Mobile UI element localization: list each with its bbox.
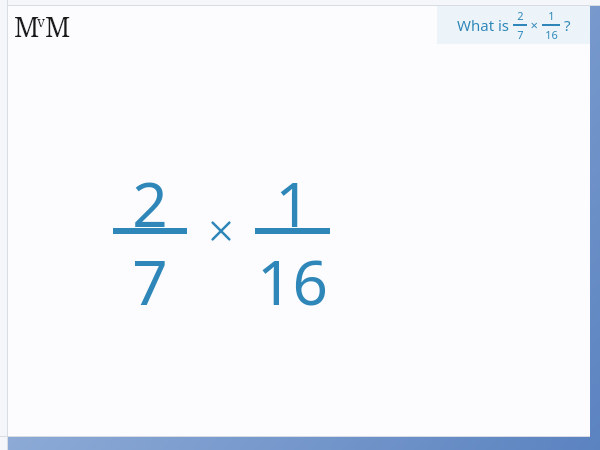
staticText: 7 — [517, 27, 524, 42]
staticText: M — [14, 8, 40, 38]
staticText: 7 — [132, 239, 168, 323]
button[interactable]: Maths Made Easy home — [14, 8, 80, 38]
staticText: 16 — [257, 239, 328, 323]
button[interactable]: What is — [437, 6, 590, 44]
staticText: ? — [560, 15, 571, 35]
staticText: × — [527, 16, 542, 34]
staticText: What is — [457, 15, 513, 35]
staticText: 1 — [548, 8, 555, 23]
staticText: 2 — [132, 161, 168, 245]
staticText: 2 — [517, 8, 524, 23]
staticText: M — [45, 8, 71, 38]
staticText: 16 — [545, 27, 558, 42]
staticText: v — [37, 12, 46, 31]
staticText: 1 — [275, 161, 311, 245]
